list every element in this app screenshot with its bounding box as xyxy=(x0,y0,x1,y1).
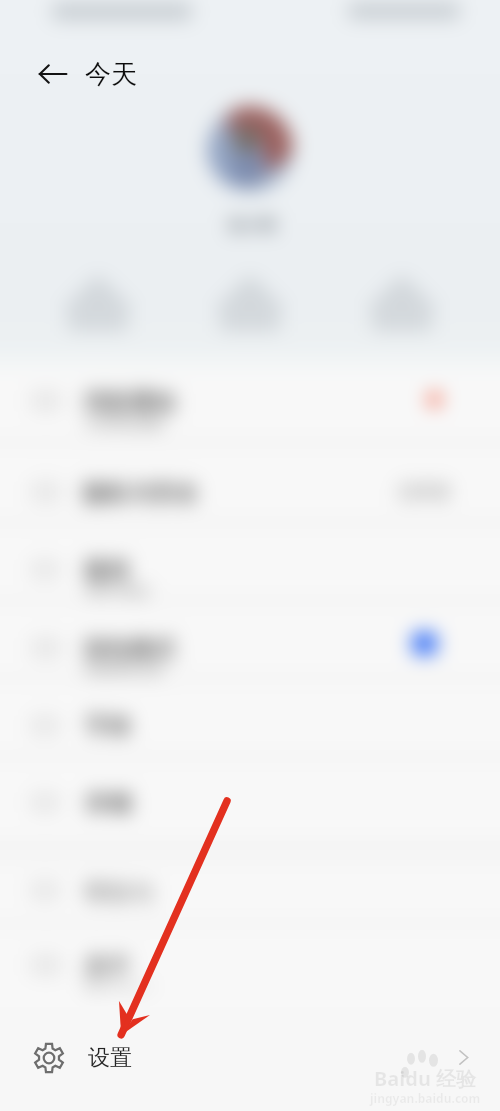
staticText: 未读消息提醒 xyxy=(85,415,163,431)
staticText: 消息通知 xyxy=(83,388,175,417)
staticText: 语言与地区 xyxy=(85,583,150,599)
staticText: 字体 xyxy=(85,712,131,741)
staticText: 通用 xyxy=(83,557,129,586)
staticText: 设置 xyxy=(88,1044,132,1072)
staticText: 关于 xyxy=(84,953,130,982)
button[interactable]: Back xyxy=(31,50,143,98)
staticText: 帮助与 xyxy=(84,879,153,908)
staticText: 已开启 xyxy=(398,482,449,503)
staticText: 版本 V8.2.1 xyxy=(85,977,153,995)
staticText: 今天 xyxy=(85,58,137,91)
staticText: 深色模式 xyxy=(83,635,175,664)
button[interactable]: 设置 xyxy=(0,1007,500,1111)
staticText: 存储 xyxy=(85,789,131,818)
other: Back xyxy=(37,58,69,90)
staticText: 隐私与安全 xyxy=(83,479,198,508)
staticText: 跟随系统设置 xyxy=(85,661,163,677)
staticText: jingyan.baidu.com xyxy=(370,1090,481,1106)
other: Open settings xyxy=(453,1047,474,1068)
staticText: Baidu 经验 xyxy=(374,1065,477,1092)
staticText: 张小明 xyxy=(228,216,276,236)
